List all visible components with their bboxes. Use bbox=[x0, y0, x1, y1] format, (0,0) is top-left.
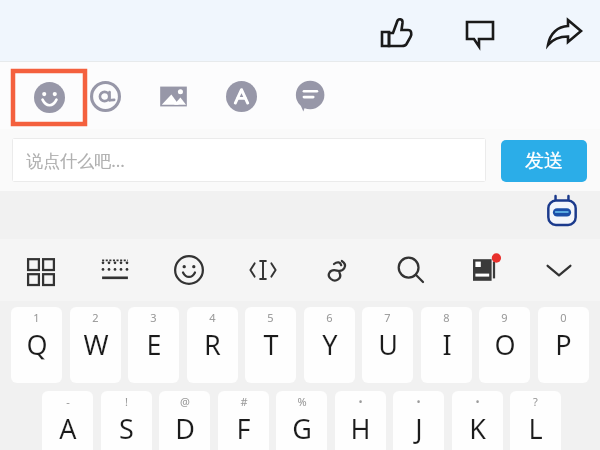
staticText: ? bbox=[533, 394, 538, 409]
button[interactable]: 3 bbox=[128, 307, 179, 383]
staticText: 1 bbox=[33, 310, 40, 325]
button[interactable]: Keyboard layout bbox=[91, 246, 139, 294]
button[interactable]: Emoji bbox=[11, 69, 87, 126]
staticText: K bbox=[469, 410, 486, 447]
staticText: U bbox=[378, 326, 398, 363]
staticText: J bbox=[415, 410, 423, 447]
staticText: 4 bbox=[209, 310, 216, 325]
button[interactable]: 7 bbox=[362, 307, 413, 383]
button[interactable]: Picture bbox=[149, 72, 197, 120]
button[interactable]: @ bbox=[159, 391, 210, 450]
staticText: Q bbox=[26, 326, 48, 363]
button[interactable]: • bbox=[452, 391, 503, 450]
button[interactable]: Assistant bbox=[543, 193, 581, 231]
button[interactable]: 发送 bbox=[501, 140, 587, 182]
staticText: R bbox=[204, 326, 221, 363]
staticText: 说点什么吧... bbox=[26, 149, 125, 172]
button[interactable]: ? bbox=[510, 391, 561, 450]
staticText: 3 bbox=[150, 310, 157, 325]
staticText: E bbox=[146, 326, 162, 363]
button[interactable]: • bbox=[335, 391, 386, 450]
staticText: • bbox=[475, 394, 480, 409]
staticText: W bbox=[83, 326, 109, 363]
button[interactable]: 8 bbox=[421, 307, 472, 383]
staticText: 9 bbox=[501, 310, 508, 325]
staticText: L bbox=[528, 410, 543, 447]
staticText: Y bbox=[322, 326, 338, 363]
staticText: O bbox=[494, 326, 516, 363]
button[interactable]: Search bbox=[387, 246, 435, 294]
staticText: % bbox=[297, 394, 307, 409]
staticText: 8 bbox=[443, 310, 450, 325]
staticText: D bbox=[175, 410, 195, 447]
staticText: • bbox=[358, 394, 363, 409]
button[interactable]: - bbox=[42, 391, 93, 450]
button[interactable]: • bbox=[393, 391, 444, 450]
button[interactable]: Mention bbox=[81, 72, 129, 120]
button[interactable]: ! bbox=[101, 391, 152, 450]
button[interactable]: 5 bbox=[245, 307, 296, 383]
button[interactable]: Notes bbox=[461, 246, 509, 294]
staticText: S bbox=[119, 410, 134, 447]
button[interactable]: 0 bbox=[538, 307, 589, 383]
staticText: • bbox=[416, 394, 421, 409]
button[interactable]: Apps bbox=[17, 246, 65, 294]
staticText: @ bbox=[180, 394, 190, 409]
button[interactable]: Text style bbox=[217, 72, 265, 120]
button[interactable]: 2 bbox=[70, 307, 121, 383]
button[interactable]: Emoji bbox=[165, 246, 213, 294]
staticText: 5 bbox=[267, 310, 274, 325]
button[interactable]: 6 bbox=[304, 307, 355, 383]
button[interactable]: Share bbox=[538, 8, 588, 58]
button[interactable]: Quick reply bbox=[285, 72, 333, 120]
staticText: - bbox=[66, 394, 70, 409]
staticText: 7 bbox=[384, 310, 391, 325]
button[interactable]: Attach bbox=[313, 246, 361, 294]
staticText: 发送 bbox=[525, 149, 563, 173]
staticText: 0 bbox=[560, 310, 567, 325]
button[interactable]: Edit text bbox=[239, 246, 287, 294]
staticText: T bbox=[263, 326, 279, 363]
staticText: 6 bbox=[326, 310, 333, 325]
staticText: H bbox=[350, 410, 371, 447]
staticText: F bbox=[236, 410, 251, 447]
staticText: 2 bbox=[92, 310, 99, 325]
button[interactable]: % bbox=[276, 391, 327, 450]
button[interactable]: # bbox=[218, 391, 269, 450]
staticText: A bbox=[59, 410, 77, 447]
staticText: I bbox=[442, 326, 452, 363]
staticText: P bbox=[555, 326, 572, 363]
button[interactable]: 9 bbox=[479, 307, 530, 383]
button[interactable]: 1 bbox=[11, 307, 62, 383]
button[interactable]: 4 bbox=[187, 307, 238, 383]
staticText: # bbox=[240, 394, 248, 409]
button[interactable]: Hide keyboard bbox=[535, 246, 583, 294]
button[interactable]: 说点什么吧... bbox=[12, 138, 486, 182]
button[interactable]: Comment bbox=[456, 8, 504, 56]
button[interactable]: Like bbox=[372, 8, 420, 56]
staticText: ! bbox=[125, 394, 128, 409]
staticText: G bbox=[292, 410, 312, 447]
